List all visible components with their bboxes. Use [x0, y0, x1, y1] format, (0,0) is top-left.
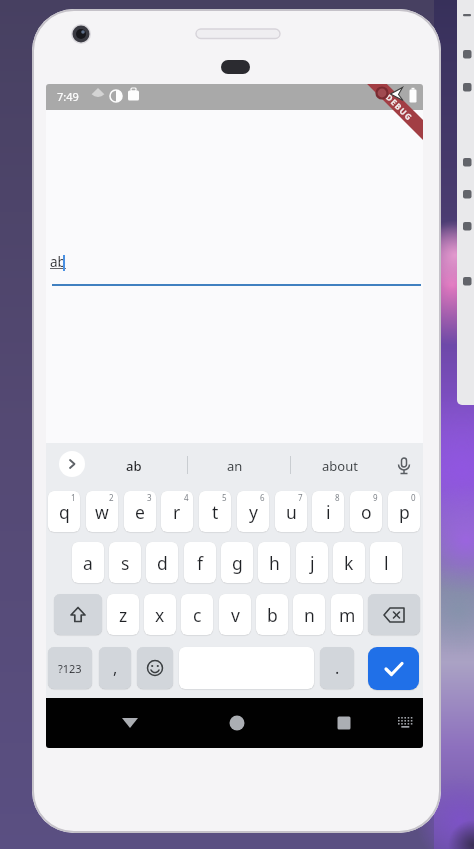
button[interactable]: o [350, 491, 382, 532]
button[interactable] [368, 594, 420, 635]
staticText: p [399, 500, 410, 524]
staticText: 4 [184, 492, 189, 503]
staticText: g [232, 551, 243, 575]
button[interactable] [216, 702, 258, 744]
staticText: l [384, 551, 389, 575]
staticText: j [310, 551, 315, 575]
staticText: ?123 [58, 661, 82, 676]
button[interactable]: m [331, 594, 363, 635]
staticText: 5 [222, 492, 227, 503]
staticText: ab [50, 253, 66, 271]
staticText: w [95, 500, 109, 524]
staticText: u [286, 500, 297, 524]
staticText: d [157, 551, 168, 575]
staticText: y [249, 500, 258, 524]
button[interactable]: k [333, 542, 365, 583]
staticText: c [193, 603, 202, 627]
button[interactable]: y [237, 491, 269, 532]
staticText: about [322, 457, 358, 475]
staticText: DEBUG [384, 91, 415, 123]
staticText: f [197, 551, 204, 575]
button[interactable]: an [205, 450, 265, 481]
button[interactable]: x [144, 594, 176, 635]
button[interactable]: i [312, 491, 344, 532]
button[interactable]: a [72, 542, 104, 583]
staticText: 7 [298, 492, 303, 503]
staticText: 1 [71, 492, 76, 503]
staticText: t [212, 500, 219, 524]
button[interactable]: e [124, 491, 156, 532]
staticText: b [267, 603, 278, 627]
button[interactable]: d [146, 542, 178, 583]
staticText: 9 [373, 492, 378, 503]
button[interactable]: f [184, 542, 216, 583]
staticText: s [121, 551, 130, 575]
staticText: m [339, 603, 356, 627]
button[interactable] [59, 451, 85, 477]
button[interactable] [54, 594, 102, 635]
button[interactable]: , [99, 647, 131, 689]
staticText: h [269, 551, 280, 575]
staticText: an [227, 457, 243, 475]
button[interactable]: z [107, 594, 139, 635]
button[interactable]: n [293, 594, 325, 635]
button[interactable]: u [275, 491, 307, 532]
staticText: 8 [335, 492, 340, 503]
button[interactable]: b [256, 594, 288, 635]
staticText: x [155, 603, 165, 627]
staticText: v [231, 603, 240, 627]
button[interactable]: about [310, 450, 370, 481]
button[interactable]: ab [104, 450, 164, 481]
staticText: . [335, 657, 340, 679]
button[interactable]: p [388, 491, 420, 532]
button[interactable]: q [48, 491, 80, 532]
staticText: o [361, 500, 372, 524]
staticText: i [326, 500, 331, 524]
staticText: k [344, 551, 354, 575]
staticText: z [119, 603, 128, 627]
button[interactable]: c [181, 594, 213, 635]
button[interactable]: g [221, 542, 253, 583]
staticText: 0 [411, 492, 416, 503]
button[interactable] [109, 702, 150, 744]
staticText: , [113, 657, 118, 679]
button[interactable]: r [161, 491, 193, 532]
staticText: n [304, 603, 315, 627]
button[interactable] [390, 706, 420, 738]
button[interactable] [368, 647, 419, 690]
button[interactable]: w [86, 491, 118, 532]
staticText: e [135, 500, 145, 524]
button[interactable]: v [219, 594, 251, 635]
button[interactable]: s [109, 542, 141, 583]
staticText: ab [126, 457, 142, 475]
button[interactable] [323, 702, 365, 744]
staticText: 7:49 [57, 89, 79, 104]
staticText: q [59, 500, 70, 524]
staticText: 2 [109, 492, 114, 503]
button[interactable]: j [296, 542, 328, 583]
button[interactable]: h [258, 542, 290, 583]
button[interactable]: l [370, 542, 402, 583]
button[interactable] [389, 450, 419, 481]
button[interactable]: t [199, 491, 231, 532]
staticText: 6 [260, 492, 265, 503]
button[interactable]: . [320, 647, 354, 689]
staticText: r [173, 500, 181, 524]
button[interactable] [137, 647, 173, 689]
button[interactable]: ?123 [48, 647, 92, 689]
staticText: a [83, 551, 93, 575]
staticText: 3 [147, 492, 152, 503]
